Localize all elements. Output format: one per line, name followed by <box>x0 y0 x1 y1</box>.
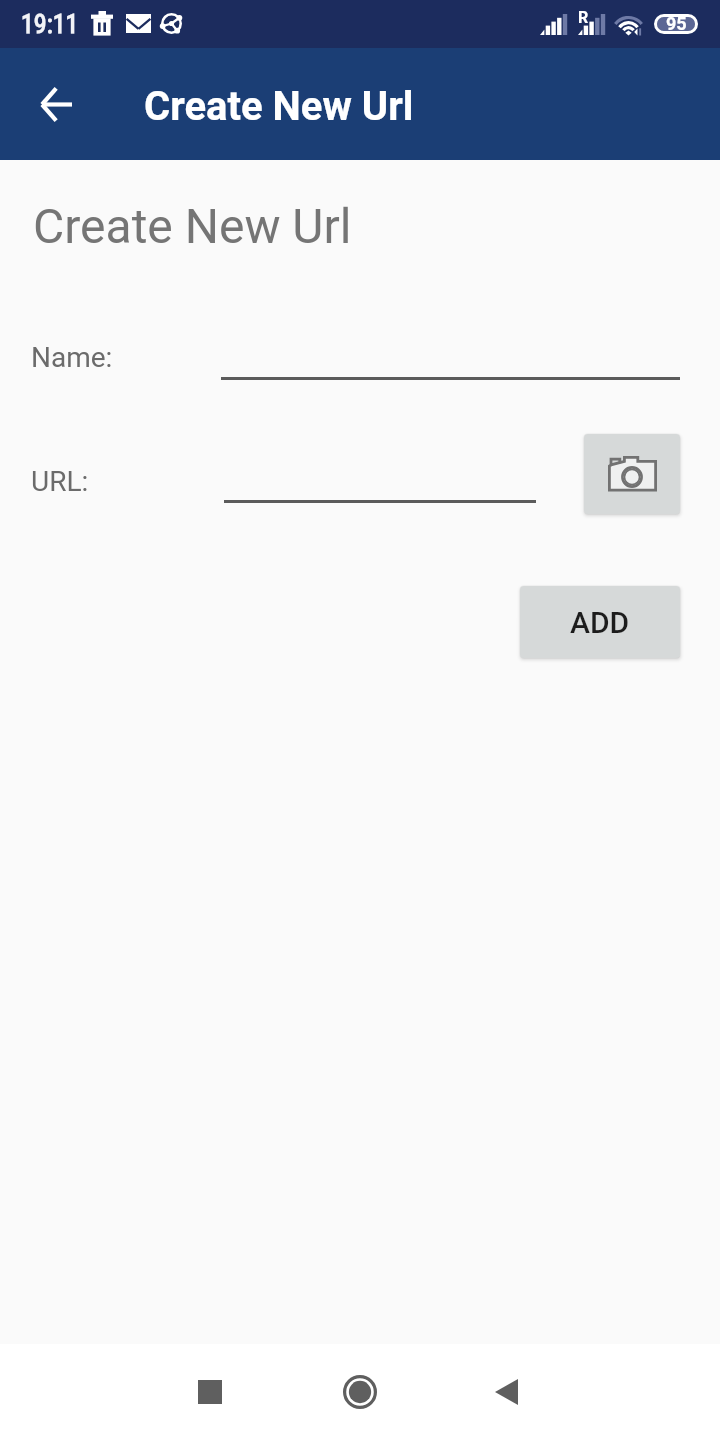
staticText: 95 <box>666 13 687 33</box>
button[interactable]: Navigate up <box>24 72 88 136</box>
staticText: Name: <box>31 341 113 374</box>
staticText: ADD <box>570 605 630 640</box>
button[interactable]: Home <box>324 1356 396 1428</box>
staticText: Create New Url <box>33 198 352 254</box>
staticText: R <box>578 8 589 27</box>
staticText: 19:11 <box>21 9 79 39</box>
staticText: URL: <box>31 465 89 498</box>
staticText: Create New Url <box>144 83 414 130</box>
button[interactable]: Take photo <box>584 434 680 514</box>
button[interactable]: Back <box>470 1356 542 1428</box>
button[interactable]: Recent apps <box>174 1356 246 1428</box>
button[interactable]: ADD <box>520 586 680 658</box>
